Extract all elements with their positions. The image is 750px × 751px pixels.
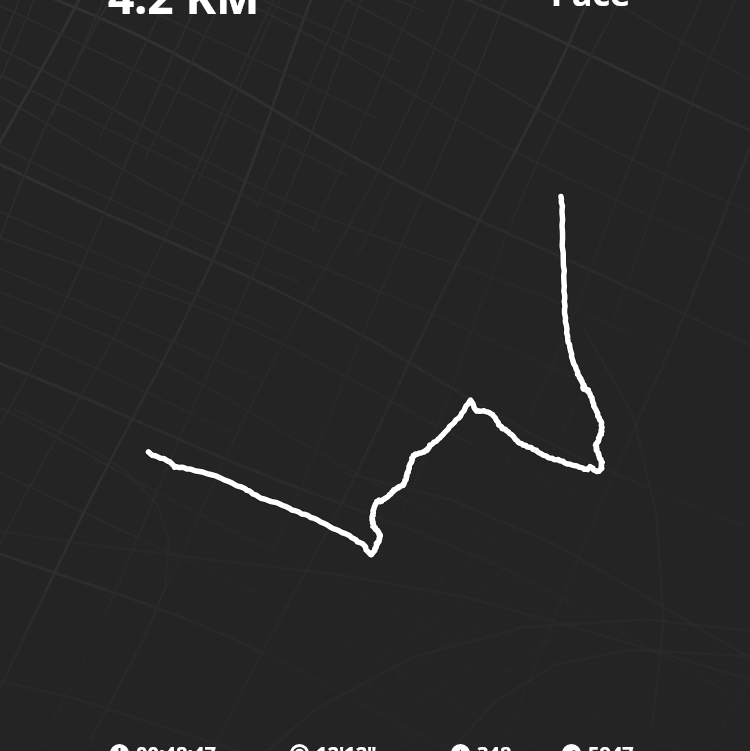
other: Steps (562, 744, 581, 751)
staticText: 5947 (588, 740, 634, 751)
button[interactable]: Steps (562, 744, 634, 751)
button[interactable]: Average pace (290, 744, 377, 751)
staticText: 12'12" (316, 740, 377, 751)
other: Duration (110, 744, 129, 751)
button[interactable]: Duration (110, 744, 216, 751)
other: Calories (451, 744, 470, 751)
button[interactable]: 4.2 KM (108, 0, 260, 28)
button[interactable]: Calories (451, 744, 512, 751)
button[interactable]: Pace (551, 0, 631, 16)
staticText: 348 (477, 740, 512, 751)
staticText: 00:48:47 (136, 740, 216, 751)
other: Average pace (290, 744, 309, 751)
